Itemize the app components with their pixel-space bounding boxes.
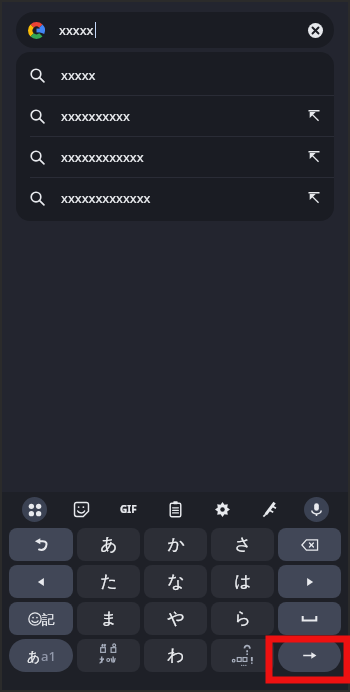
button[interactable]: Clear query: [304, 19, 326, 41]
staticText: a1: [41, 647, 56, 665]
staticText: さ: [234, 534, 252, 555]
staticText: xxxxxxxxxxxxx: [61, 189, 151, 207]
button[interactable]: Switch input mode: [9, 639, 73, 672]
button[interactable]: xxxxx: [16, 12, 334, 48]
button[interactable]: ま: [77, 602, 140, 635]
staticText: か: [167, 534, 185, 555]
staticText: ら: [234, 608, 252, 629]
button[interactable]: は: [211, 565, 274, 598]
button[interactable]: GIF: [105, 492, 152, 526]
button[interactable]: あ: [77, 528, 140, 561]
staticText: や: [167, 608, 185, 629]
button[interactable]: xxxxxxxxxx: [16, 96, 334, 136]
staticText: GIF: [120, 502, 137, 516]
button[interactable]: Stickers: [58, 492, 105, 526]
button[interactable]: や: [144, 602, 207, 635]
button[interactable]: Apps: [10, 492, 58, 526]
button[interactable]: Voice input: [293, 492, 340, 526]
staticText: xxxxx: [59, 21, 94, 39]
button[interactable]: Backspace: [278, 528, 341, 561]
staticText: あ: [100, 534, 118, 555]
button[interactable]: Move left: [9, 565, 73, 598]
button[interactable]: xxxxxxxxxxxxx: [16, 178, 334, 218]
staticText: た: [100, 571, 118, 592]
button[interactable]: Move right: [278, 565, 341, 598]
staticText: 記: [42, 611, 55, 627]
button[interactable]: ら: [211, 602, 274, 635]
button[interactable]: Clipboard: [152, 492, 199, 526]
staticText: は: [234, 571, 252, 592]
staticText: あ: [27, 648, 41, 664]
staticText: わ: [167, 645, 185, 666]
staticText: xxxxxxxxxx: [61, 107, 130, 125]
button[interactable]: な: [144, 565, 207, 598]
button[interactable]: わ: [144, 639, 207, 672]
button[interactable]: xxxxxxxxxxxx: [16, 137, 334, 177]
button[interactable]: Undo: [9, 528, 73, 561]
staticText: な: [167, 571, 185, 592]
button[interactable]: Enter: [278, 639, 341, 672]
button[interactable]: た: [77, 565, 140, 598]
button[interactable]: か: [144, 528, 207, 561]
button[interactable]: Dakuten: [77, 639, 140, 672]
button[interactable]: さ: [211, 528, 274, 561]
staticText: xxxxx: [61, 66, 96, 84]
button[interactable]: Settings: [199, 492, 246, 526]
button[interactable]: Space: [278, 602, 341, 635]
staticText: xxxxxxxxxxxx: [61, 148, 144, 166]
button[interactable]: Punctuation: [211, 639, 274, 672]
staticText: ま: [100, 608, 118, 629]
button[interactable]: Handwriting: [246, 492, 293, 526]
button[interactable]: Emoji and symbols: [9, 602, 73, 635]
button[interactable]: xxxxx: [16, 55, 334, 95]
